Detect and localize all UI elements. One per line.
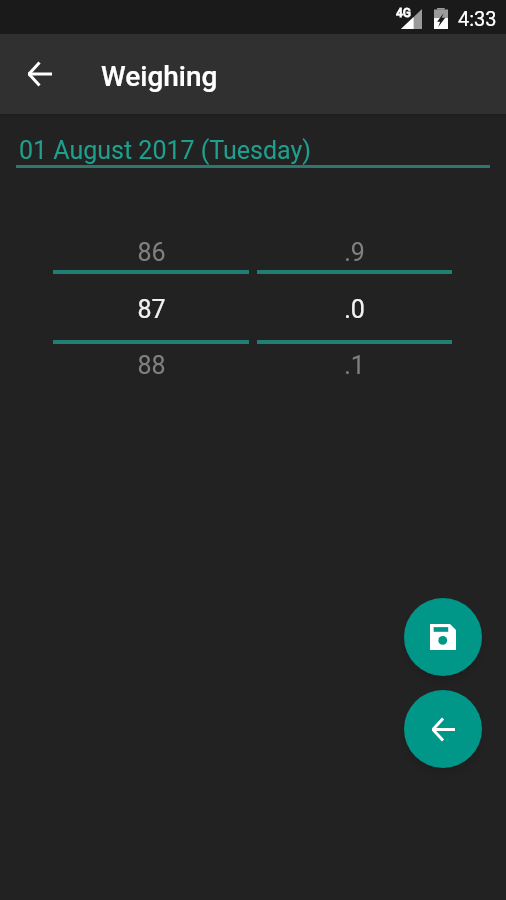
button[interactable]: .1 (257, 344, 452, 386)
staticText: 4G (396, 6, 411, 20)
staticText: 87 (137, 295, 166, 324)
staticText: .1 (344, 351, 365, 380)
staticText: 01 August 2017 (Tuesday) (19, 136, 312, 165)
button[interactable]: 01 August 2017 (Tuesday) (0, 120, 506, 168)
staticText: .9 (344, 238, 365, 267)
staticText: .0 (344, 295, 365, 324)
staticText: Weighing (101, 60, 218, 93)
staticText: 88 (137, 351, 166, 380)
button[interactable]: Save (404, 598, 482, 676)
staticText: 86 (137, 238, 166, 267)
button[interactable]: 87 (53, 274, 249, 340)
button[interactable]: .0 (257, 274, 452, 340)
button[interactable]: Back (404, 690, 482, 768)
button[interactable]: 86 (53, 228, 249, 270)
staticText: 4:33 (458, 7, 497, 30)
button[interactable]: .9 (257, 228, 452, 270)
button[interactable]: Navigate up (12, 46, 68, 102)
button[interactable]: 88 (53, 344, 249, 386)
